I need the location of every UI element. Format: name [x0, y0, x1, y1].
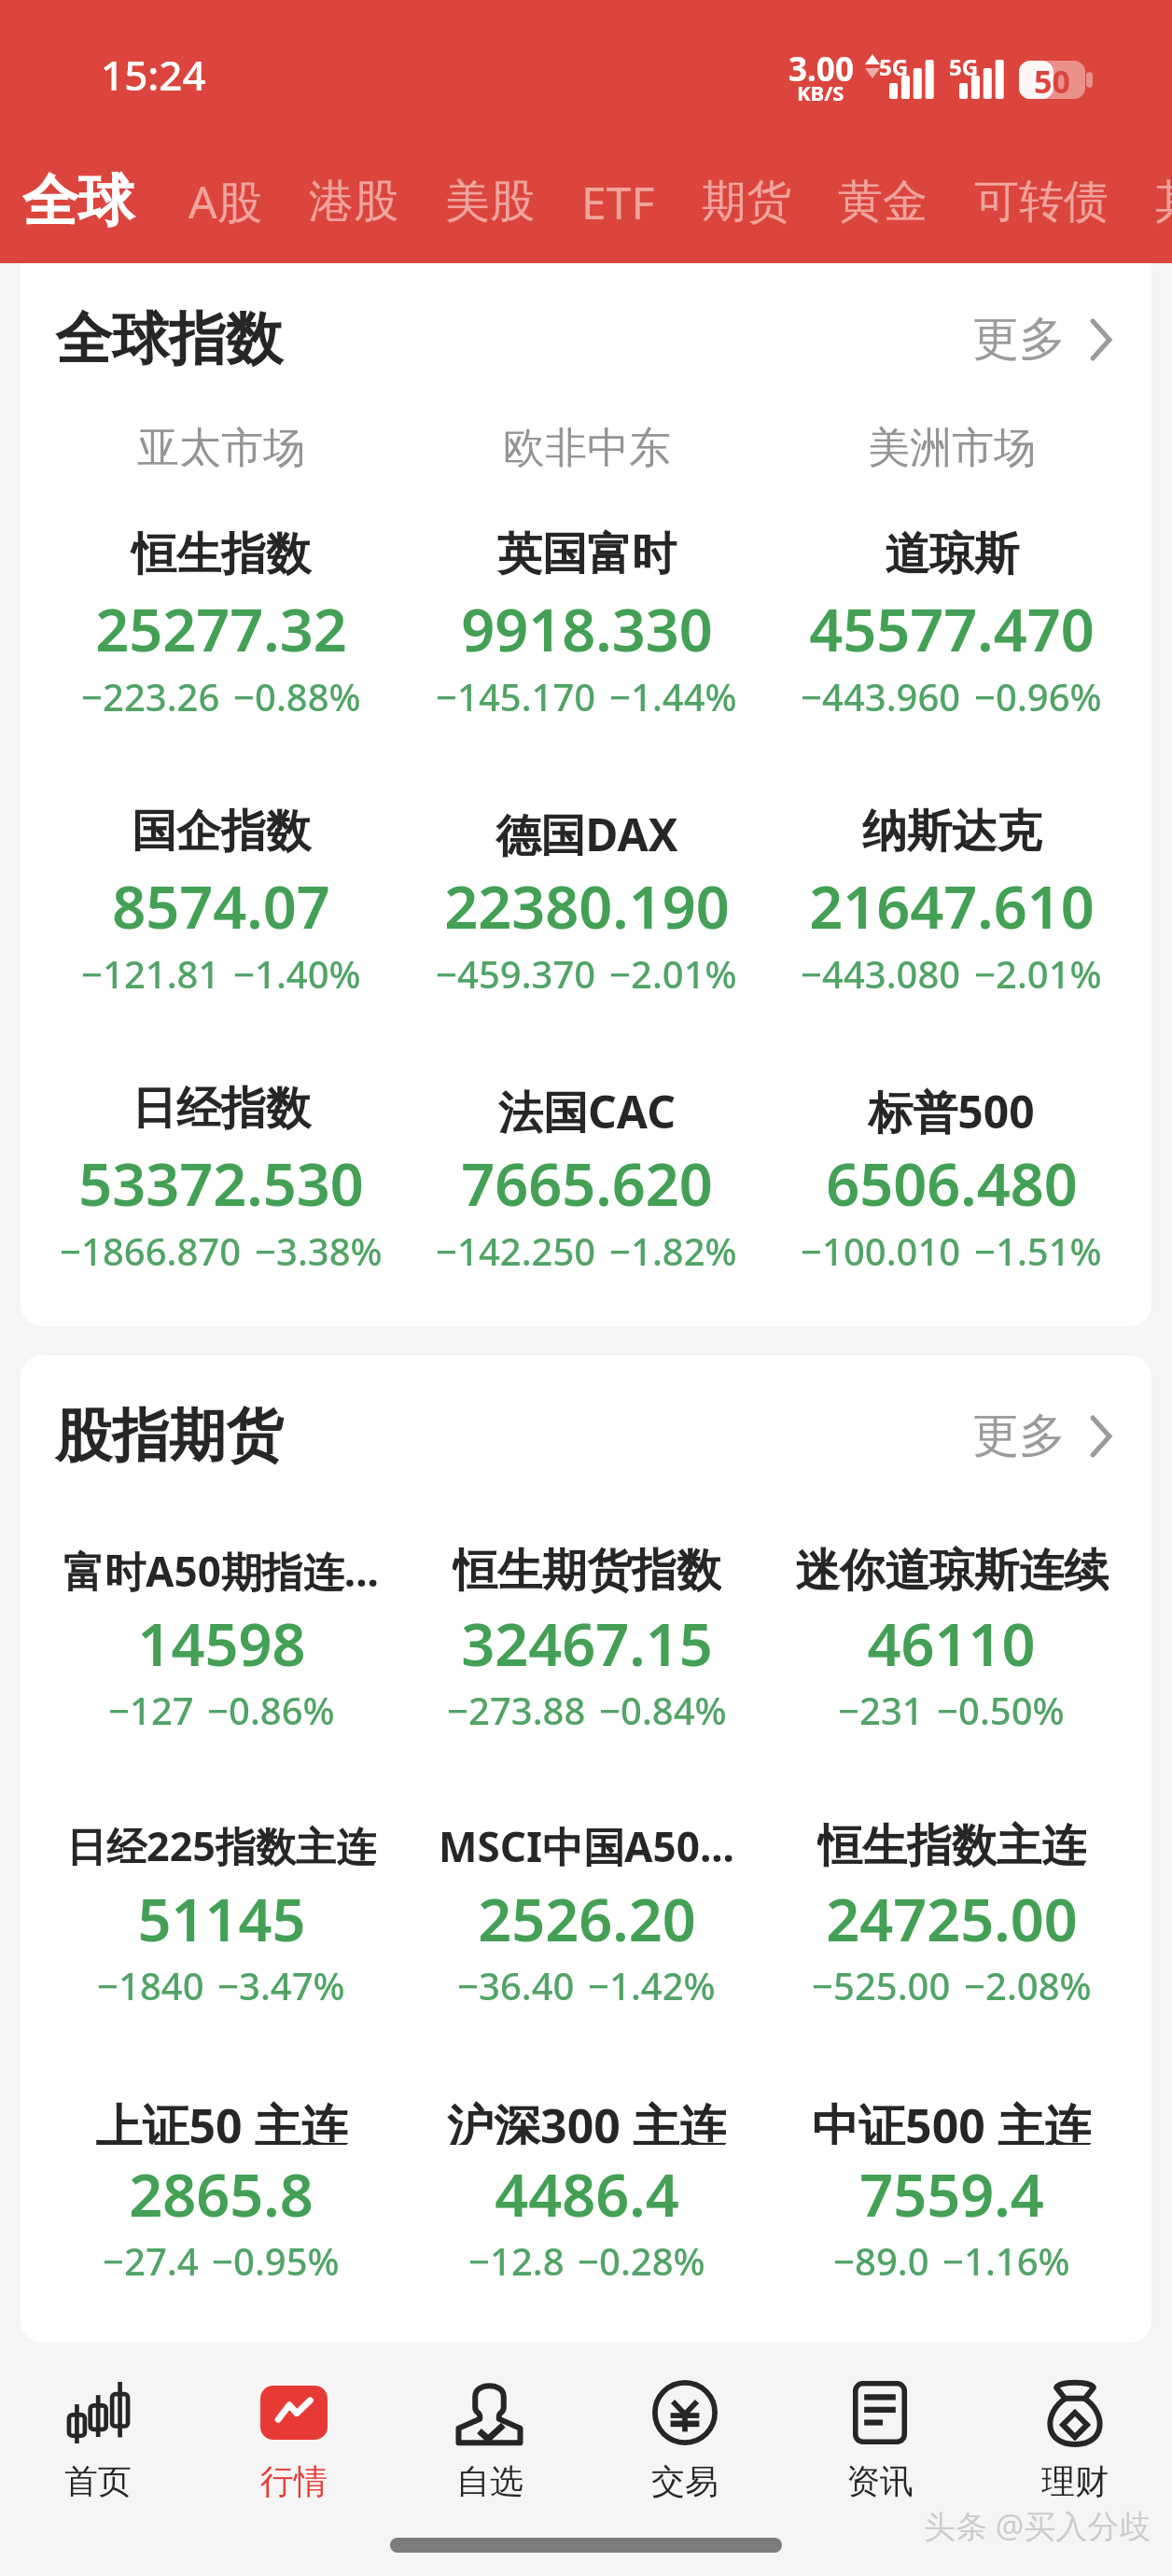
staticText: −1.44% [609, 671, 737, 721]
button[interactable]: ETF [581, 172, 655, 232]
button[interactable]: 恒生指数主连 [769, 1818, 1134, 2010]
button[interactable]: 恒生期货指数 [404, 1543, 769, 1735]
staticText: 理财 [1041, 2460, 1109, 2501]
button[interactable]: 法国CAC [404, 1081, 769, 1276]
staticText: 纳斯达克 [862, 804, 1041, 860]
staticText: −121.81 [81, 948, 220, 999]
staticText: −2.08% [964, 1960, 1092, 2010]
staticText: −0.86% [207, 1685, 335, 1735]
button[interactable]: 黄金 [838, 174, 928, 230]
staticText: 2865.8 [129, 2154, 314, 2234]
staticText: 24725.00 [826, 1879, 1078, 1959]
staticText: −100.010 [801, 1225, 961, 1276]
button[interactable]: 道琼斯 [769, 526, 1134, 721]
staticText: 21647.610 [809, 866, 1095, 946]
staticText: 3.00 [788, 47, 854, 91]
staticText: 46110 [867, 1603, 1036, 1684]
button[interactable]: 标普500 [769, 1081, 1134, 1276]
staticText: 32467.15 [461, 1603, 713, 1684]
button[interactable]: 其 [1155, 174, 1172, 230]
staticText: 7559.4 [859, 2154, 1044, 2234]
staticText: 上证50 主连 [95, 2093, 348, 2145]
button[interactable]: 德国DAX [404, 804, 769, 999]
staticText: 恒生指数 [132, 526, 311, 582]
staticText: 德国DAX [495, 804, 678, 860]
staticText: 标普500 [868, 1081, 1035, 1137]
staticText: 交易 [651, 2460, 719, 2501]
staticText: 9918.330 [461, 589, 713, 669]
staticText: 恒生指数主连 [817, 1818, 1086, 1869]
staticText: 行情 [260, 2460, 328, 2501]
staticText: −89.0 [833, 2235, 929, 2286]
staticText: 日经225指数主连 [66, 1818, 376, 1869]
staticText: 5G [879, 51, 909, 82]
staticText: 15:24 [101, 47, 206, 103]
staticText: 2526.20 [478, 1879, 696, 1959]
staticText: 14598 [137, 1603, 306, 1684]
button[interactable]: 富时A50期指连... [38, 1543, 404, 1735]
staticText: 53372.530 [78, 1143, 364, 1224]
staticText: −145.170 [436, 671, 596, 721]
button[interactable]: 日经225指数主连 [38, 1818, 404, 2010]
staticText: MSCI中国A50... [439, 1818, 734, 1869]
button[interactable]: Markets [196, 2352, 392, 2501]
staticText: 道琼斯 [885, 526, 1019, 582]
staticText: 美股 [445, 174, 535, 230]
staticText: 8574.07 [112, 866, 330, 946]
staticText: 45577.470 [809, 589, 1095, 669]
staticText: −0.96% [974, 671, 1102, 721]
staticText: 其 [1155, 174, 1172, 230]
button[interactable]: 上证50 主连 [38, 2093, 404, 2286]
staticText: 51145 [137, 1879, 306, 1959]
button[interactable]: Watchlist [392, 2352, 587, 2501]
staticText: −1.42% [588, 1960, 716, 2010]
button[interactable]: 沪深300 主连 [404, 2093, 769, 2286]
button[interactable]: 恒生指数 [38, 526, 404, 721]
staticText: 日经指数 [132, 1081, 311, 1137]
button[interactable]: 英国富时 [404, 526, 769, 721]
staticText: 期货 [702, 174, 791, 230]
staticText: −36.40 [457, 1960, 575, 2010]
button[interactable]: 期货 [702, 174, 791, 230]
button[interactable]: A股 [188, 171, 262, 232]
staticText: 5G [949, 51, 979, 82]
staticText: −3.47% [217, 1960, 345, 2010]
staticText: −1.82% [609, 1225, 737, 1276]
staticText: 全球指数 [55, 303, 283, 375]
staticText: 沪深300 主连 [447, 2093, 726, 2145]
button[interactable]: 全球 [22, 166, 134, 237]
staticText: A股 [188, 171, 262, 232]
staticText: 可转债 [974, 174, 1109, 230]
button[interactable]: 中证500 主连 [769, 2093, 1134, 2286]
staticText: −1840 [97, 1960, 204, 2010]
staticText: 股指期货 [55, 1400, 283, 1472]
button[interactable]: News [782, 2352, 977, 2501]
button[interactable]: 美股 [445, 174, 535, 230]
staticText: −0.84% [599, 1685, 727, 1735]
staticText: 恒生期货指数 [453, 1543, 721, 1594]
staticText: −0.50% [937, 1685, 1065, 1735]
button[interactable]: 全球指数 [21, 303, 1151, 375]
button[interactable]: 可转债 [974, 174, 1109, 230]
staticText: 港股 [309, 174, 398, 230]
staticText: −223.26 [81, 671, 220, 721]
staticText: 4486.4 [495, 2154, 679, 2234]
button[interactable]: 日经指数 [38, 1081, 404, 1276]
button[interactable]: 纳斯达克 [769, 804, 1134, 999]
button[interactable]: 港股 [309, 174, 398, 230]
button[interactable]: 国企指数 [38, 804, 404, 999]
staticText: 50 [1034, 60, 1070, 98]
button[interactable]: MSCI中国A50... [404, 1818, 769, 2010]
staticText: 资讯 [846, 2460, 914, 2501]
staticText: −273.88 [447, 1685, 586, 1735]
button[interactable]: 迷你道琼斯连续 [769, 1543, 1134, 1735]
staticText: −127 [108, 1685, 194, 1735]
button[interactable]: 股指期货 [21, 1400, 1151, 1472]
button[interactable]: Home [0, 2352, 196, 2501]
staticText: ETF [581, 172, 655, 232]
button[interactable]: Wealth [977, 2352, 1172, 2501]
button[interactable]: Trade [587, 2352, 782, 2501]
staticText: −0.28% [578, 2235, 705, 2286]
staticText: 更多 [972, 1407, 1066, 1465]
staticText: −443.080 [801, 948, 961, 999]
